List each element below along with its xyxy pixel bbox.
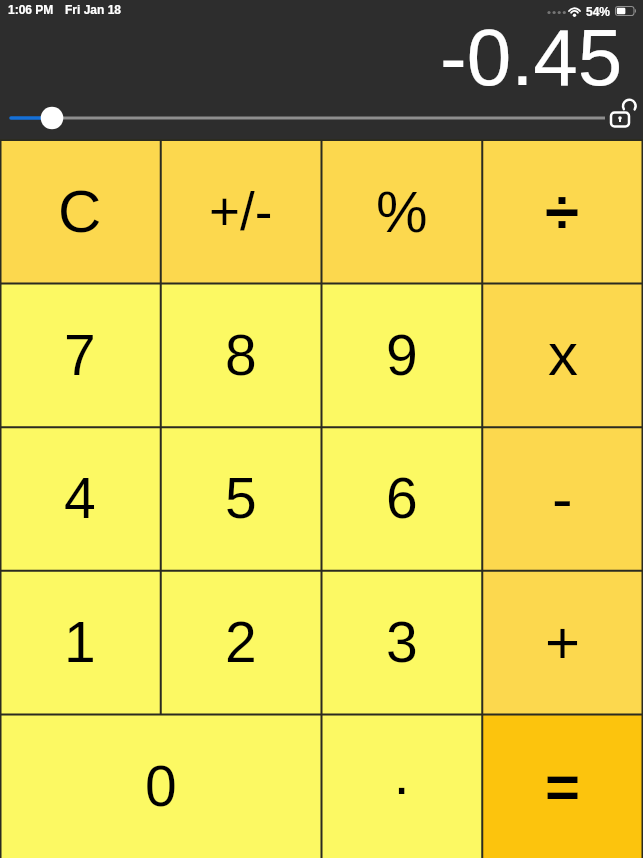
staticText: 3: [386, 610, 418, 674]
button[interactable]: 4: [0, 426, 160, 570]
staticText: x: [548, 321, 578, 388]
staticText: 2: [225, 610, 257, 674]
button[interactable]: 6: [321, 426, 482, 570]
staticText: -0.45: [440, 13, 623, 102]
button[interactable]: =: [482, 714, 643, 858]
staticText: 0: [145, 754, 177, 818]
staticText: C: [58, 178, 102, 245]
button[interactable]: 9: [321, 283, 482, 426]
button[interactable]: +: [482, 570, 643, 714]
button[interactable]: ÷: [482, 140, 643, 283]
staticText: -: [552, 464, 573, 533]
staticText: 54%: [586, 5, 611, 18]
button[interactable]: %: [321, 140, 482, 283]
button[interactable]: C: [0, 140, 160, 283]
staticText: 9: [386, 323, 418, 387]
staticText: Fri Jan 18: [65, 3, 122, 16]
staticText: 5: [225, 466, 257, 530]
staticText: 7: [64, 323, 96, 387]
staticText: =: [545, 753, 581, 820]
button[interactable]: ·: [321, 714, 482, 858]
button[interactable]: -: [482, 426, 643, 570]
staticText: +: [545, 609, 581, 676]
staticText: ÷: [545, 177, 580, 246]
button[interactable]: 1: [0, 570, 160, 714]
button[interactable]: 8: [160, 283, 321, 426]
staticText: 1: [64, 610, 96, 674]
button[interactable]: [0, 98, 643, 140]
staticText: 6: [386, 466, 418, 530]
staticText: 4: [64, 466, 96, 530]
button[interactable]: 5: [160, 426, 321, 570]
staticText: +/-: [209, 182, 273, 241]
button[interactable]: 7: [0, 283, 160, 426]
button[interactable]: 3: [321, 570, 482, 714]
staticText: ·: [392, 754, 412, 819]
button[interactable]: x: [482, 283, 643, 426]
staticText: 1:06 PM: [8, 3, 54, 16]
button[interactable]: 2: [160, 570, 321, 714]
staticText: 8: [225, 323, 257, 387]
staticText: %: [376, 179, 428, 244]
button[interactable]: 0: [0, 714, 321, 858]
button[interactable]: +/-: [160, 140, 321, 283]
